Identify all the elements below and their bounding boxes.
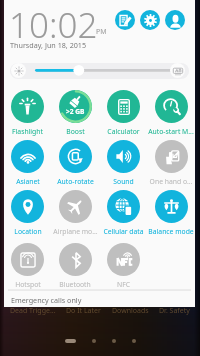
staticText: Flashlight: [12, 127, 43, 136]
button[interactable]: One hand op...: [147, 140, 195, 188]
staticText: Boost: [66, 127, 85, 136]
staticText: Airplane mo...: [53, 227, 98, 236]
staticText: Dr. Safety: [159, 306, 190, 316]
staticText: Auto-rotate: [57, 177, 94, 186]
staticText: Hotspot: [15, 280, 41, 289]
button[interactable]: Airplane mo...: [51, 190, 99, 238]
staticText: Thursday, Jun 18, 2015: [10, 40, 87, 50]
button[interactable]: Flashlight: [4, 90, 51, 138]
staticText: Sound: [113, 177, 134, 186]
button[interactable]: Auto-rotate: [51, 140, 99, 188]
staticText: Bluetooth: [59, 280, 91, 289]
staticText: Balance mode: [148, 227, 194, 236]
staticText: Location: [14, 227, 42, 236]
button[interactable]: Bluetooth: [51, 243, 99, 291]
button[interactable]: Auto-start M...: [147, 90, 195, 138]
button[interactable]: Calculator: [99, 90, 147, 138]
button[interactable]: Edit quick settings: [115, 10, 135, 30]
staticText: Auto-start M...: [148, 127, 194, 136]
staticText: >2 GB: [66, 107, 85, 116]
button[interactable]: Balance mode: [147, 190, 195, 238]
button[interactable]: User profile: [165, 10, 185, 30]
button[interactable]: Hotspot: [4, 243, 51, 291]
staticText: Cellular data: [103, 227, 144, 236]
staticText: 10:02: [9, 1, 98, 49]
staticText: PM: [96, 27, 107, 37]
button[interactable]: NFC: [99, 243, 147, 291]
button[interactable]: Asianet: [4, 140, 51, 188]
button[interactable]: Auto brightness: [170, 63, 185, 78]
button[interactable]: Location: [4, 190, 51, 238]
staticText: Do It Later: [66, 306, 101, 316]
button[interactable]: Cellular data: [99, 190, 147, 238]
staticText: Asianet: [16, 177, 40, 186]
staticText: Dead Trigge...: [10, 306, 56, 316]
button[interactable]: Sound: [99, 140, 147, 188]
staticText: Emergency calls only: [11, 295, 82, 305]
button[interactable]: Brightness: [11, 63, 26, 78]
staticText: One hand op...: [148, 177, 194, 186]
staticText: Calculator: [107, 127, 140, 136]
staticText: Downloads: [112, 306, 149, 316]
button[interactable]: Settings: [140, 10, 160, 30]
button[interactable]: >2 GB: [51, 90, 99, 138]
staticText: NFC: [117, 280, 130, 289]
